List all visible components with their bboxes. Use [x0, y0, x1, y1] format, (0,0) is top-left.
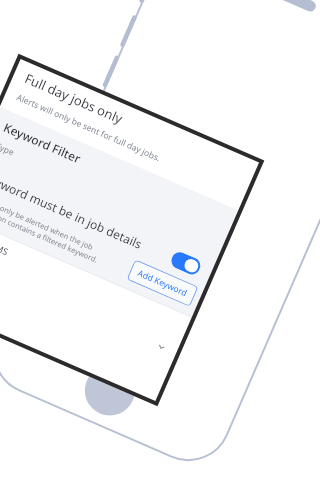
- staticText: Add Keyword: [136, 267, 189, 299]
- staticText: Grade 6: [0, 249, 160, 351]
- button[interactable]: Add Keyword: [126, 259, 198, 307]
- staticText: Full day jobs only: [22, 69, 126, 128]
- staticText: Freedom MS: [0, 225, 178, 330]
- staticText: Keyword Filter: [1, 119, 84, 167]
- staticText: Type: [0, 140, 16, 158]
- button[interactable]: Freedom MS: [0, 212, 195, 343]
- button[interactable]: Grade 6: [0, 236, 185, 367]
- button[interactable]: [0, 284, 164, 406]
- button[interactable]: 7: [0, 260, 175, 391]
- staticText: 7: [0, 273, 157, 378]
- button[interactable]: Keyword must be in job details toggle: [169, 249, 203, 277]
- staticText: [0, 297, 147, 394]
- staticText: Alerts will only be sent for full day jo…: [15, 91, 163, 164]
- staticText: Keyword must be in job details: [0, 168, 168, 262]
- button[interactable]: Keyword must be in job details: [0, 155, 220, 289]
- staticText: You will only be alerted when the job de…: [0, 191, 129, 276]
